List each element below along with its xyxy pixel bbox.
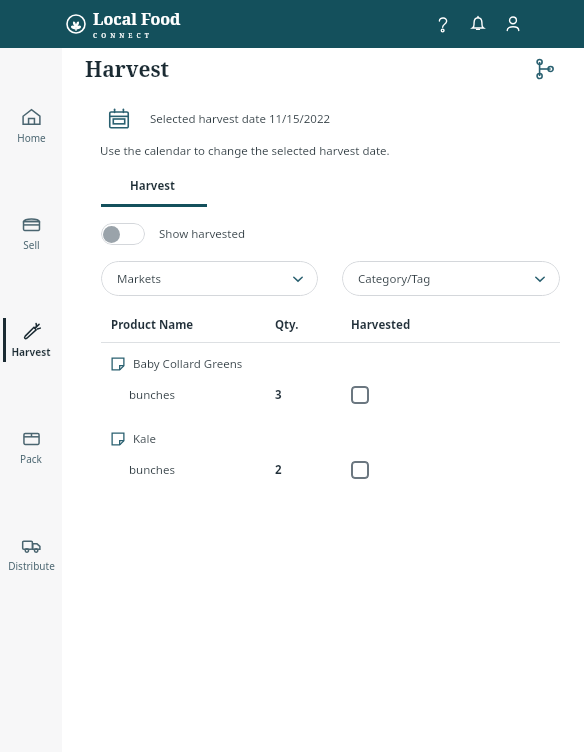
staticText: Show harvested	[159, 226, 246, 242]
button[interactable]: Baby Collard Greens	[111, 356, 584, 372]
staticText: Distribute	[8, 559, 55, 573]
staticText: Product Name	[111, 317, 275, 333]
staticText: 2	[275, 462, 351, 478]
button[interactable]: Mark Baby Collard Greens harvested	[351, 386, 369, 404]
button[interactable]: Category/Tag	[342, 261, 560, 296]
staticText: Harvest	[11, 345, 51, 359]
button[interactable]: Pack	[0, 421, 62, 473]
staticText: Pack	[20, 452, 42, 466]
staticText: C O N N E C T	[93, 31, 150, 40]
staticText: Selected harvest date 11/15/2022	[150, 111, 331, 127]
staticText: Harvest	[130, 178, 176, 194]
button[interactable]: Show harvested	[101, 223, 246, 245]
button[interactable]: Harvest	[0, 314, 62, 366]
staticText: 3	[275, 387, 351, 403]
staticText: Kale	[133, 431, 157, 447]
staticText: Baby Collard Greens	[133, 356, 243, 372]
staticText: Qty.	[275, 317, 351, 333]
staticText: Harvest	[85, 55, 170, 84]
staticText: Harvested	[351, 317, 411, 333]
staticText: Sell	[23, 238, 40, 252]
staticText: bunches	[129, 462, 275, 478]
button[interactable]: Selected harvest date 11/15/2022	[108, 108, 584, 130]
button[interactable]: Account	[498, 9, 528, 39]
staticText: Category/Tag	[358, 271, 431, 287]
button[interactable]: Home	[0, 100, 62, 152]
button[interactable]: Sell	[0, 207, 62, 259]
staticText: Local Food	[93, 8, 181, 30]
staticText: Markets	[117, 271, 161, 287]
staticText: bunches	[129, 387, 275, 403]
button[interactable]: Markets	[101, 261, 318, 296]
staticText: Use the calendar to change the selected …	[100, 143, 390, 159]
button[interactable]: Kale	[111, 431, 584, 447]
button[interactable]: Share	[530, 55, 558, 83]
button[interactable]: Notifications	[463, 9, 493, 39]
button[interactable]: Distribute	[0, 528, 62, 580]
button[interactable]: Mark Kale harvested	[351, 461, 369, 479]
staticText: Home	[17, 131, 46, 145]
button[interactable]: Harvest	[101, 176, 207, 207]
button[interactable]: Help	[428, 9, 458, 39]
